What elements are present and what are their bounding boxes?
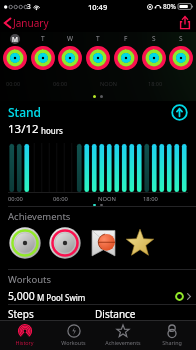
staticText: 18:00 xyxy=(148,80,163,87)
staticText: 5,000 xyxy=(8,289,35,303)
button[interactable]: Day activity xyxy=(58,46,82,70)
staticText: 13/12 xyxy=(8,121,39,137)
staticText: Achievements xyxy=(8,210,71,223)
button[interactable]: Day activity xyxy=(3,46,27,70)
staticText: M Pool Swim xyxy=(37,292,86,303)
staticText: January xyxy=(13,16,49,30)
staticText: M xyxy=(12,35,18,44)
button[interactable]: Day activity xyxy=(86,46,110,70)
button[interactable]: Star achievement xyxy=(125,228,155,258)
staticText: 00:00 xyxy=(6,80,21,87)
staticText: Distance xyxy=(95,307,136,320)
button[interactable]: Day activity xyxy=(142,46,166,70)
staticText: 18:00 xyxy=(143,195,158,203)
staticText: Steps xyxy=(8,307,34,320)
button[interactable]: Workouts xyxy=(49,321,98,350)
staticText: 3 xyxy=(27,2,31,11)
staticText: Workouts xyxy=(8,273,51,286)
staticText: W xyxy=(67,34,74,43)
button[interactable]: Stand goal reached xyxy=(171,104,188,121)
staticText: T xyxy=(96,34,100,43)
staticText: S xyxy=(179,34,183,43)
button[interactable]: Achievements xyxy=(98,321,147,350)
staticText: F xyxy=(124,34,128,43)
staticText: hours xyxy=(41,125,63,136)
staticText: 00:00 xyxy=(8,195,23,203)
button[interactable]: January xyxy=(0,16,55,30)
staticText: 10:49 xyxy=(88,2,108,12)
button[interactable]: 5,000 xyxy=(8,289,196,303)
button[interactable]: Day activity xyxy=(114,46,138,70)
button[interactable]: Day activity xyxy=(169,46,193,70)
staticText: History xyxy=(15,339,34,346)
staticText: NOON xyxy=(98,195,116,203)
staticText: S xyxy=(152,34,156,43)
button[interactable]: Day activity xyxy=(31,46,55,70)
staticText: Stand xyxy=(8,104,42,120)
staticText: NOON xyxy=(100,80,117,87)
staticText: Achievements xyxy=(105,339,141,346)
staticText: 06:00 xyxy=(53,80,68,87)
button[interactable]: Sharing xyxy=(147,321,196,350)
staticText: 80% xyxy=(163,2,176,11)
button[interactable]: History xyxy=(0,321,49,350)
button[interactable]: Move achievement xyxy=(48,226,82,260)
button[interactable]: Basketball achievement xyxy=(88,228,119,259)
staticText: Workouts xyxy=(61,339,86,346)
staticText: 06:00 xyxy=(53,195,68,203)
button[interactable]: Exercise achievement xyxy=(8,226,42,260)
button[interactable]: Share xyxy=(174,16,196,29)
staticText: T xyxy=(41,34,45,43)
staticText: Sharing xyxy=(162,339,182,346)
